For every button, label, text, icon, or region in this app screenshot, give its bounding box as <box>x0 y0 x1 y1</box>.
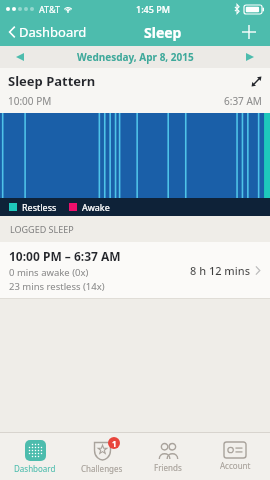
staticText: Challenges <box>81 463 123 474</box>
staticText: AT&T <box>39 3 60 15</box>
staticText: Restless <box>22 201 57 213</box>
staticText: 23 mins restless (14x) <box>9 280 105 293</box>
staticText: 10:00 PM – 6:37 AM <box>9 248 121 264</box>
button[interactable]: Next day <box>240 47 260 67</box>
button[interactable]: Sleep Pattern <box>0 68 270 113</box>
staticText: 1:45 PM <box>136 3 170 15</box>
button[interactable]: Add sleep entry <box>236 19 262 45</box>
button[interactable]: Friends <box>136 438 200 476</box>
staticText: Account <box>220 460 251 471</box>
staticText: 10:00 PM <box>8 94 52 108</box>
button[interactable]: Dashboard <box>3 437 67 477</box>
staticText: 6:37 AM <box>224 94 262 108</box>
staticText: 8 h 12 mins <box>190 263 250 278</box>
staticText: Wednesday, Apr 8, 2015 <box>77 50 194 64</box>
staticText: Dashboard <box>19 23 87 41</box>
staticText: Friends <box>154 462 182 473</box>
staticText: Awake <box>82 201 110 213</box>
button[interactable]: 1 <box>70 437 134 477</box>
button[interactable]: 10:00 PM – 6:37 AM <box>0 242 270 298</box>
staticText: Sleep Pattern <box>8 72 96 90</box>
staticText: LOGGED SLEEP <box>10 223 74 235</box>
staticText: Sleep <box>144 23 182 42</box>
button[interactable]: Previous day <box>10 47 30 67</box>
staticText: 0 mins awake (0x) <box>9 266 89 279</box>
button[interactable]: Dashboard <box>4 21 91 43</box>
staticText: 1 <box>112 438 117 449</box>
staticText: Dashboard <box>14 463 56 474</box>
button[interactable]: Account <box>203 439 267 474</box>
